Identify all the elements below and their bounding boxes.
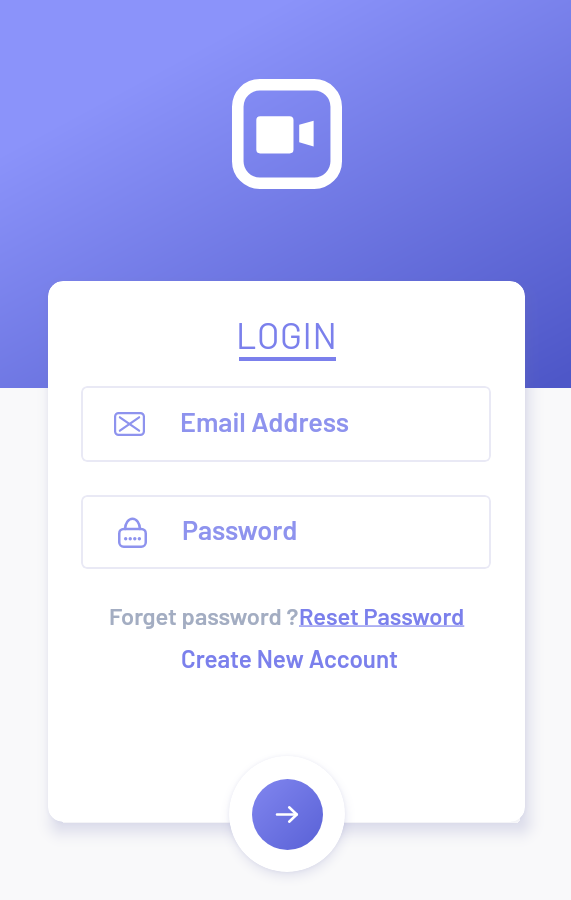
button[interactable]: Email Address	[81, 386, 491, 462]
button[interactable]: Password	[81, 495, 491, 569]
button[interactable]: Create New Account	[181, 644, 399, 673]
staticText: Forget password ?	[109, 601, 299, 629]
staticText: LOGIN	[236, 313, 338, 356]
staticText: Email Address	[180, 405, 350, 437]
button[interactable]: Sign in	[252, 779, 323, 850]
button[interactable]: Reset Password	[299, 601, 465, 629]
staticText: Password	[182, 513, 298, 545]
